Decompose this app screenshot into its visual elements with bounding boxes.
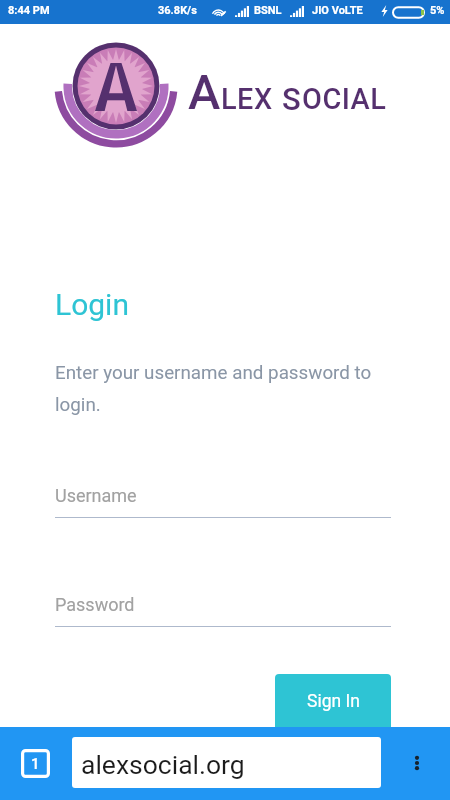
staticText: 8:44 PM	[8, 4, 50, 17]
staticText: 5%	[430, 4, 445, 17]
button[interactable]: Username	[55, 485, 391, 518]
staticText: Login	[55, 287, 129, 322]
button[interactable]: alexsocial.org	[72, 737, 381, 788]
staticText: Username	[55, 485, 137, 506]
button[interactable]: Tabs	[21, 749, 50, 778]
staticText: 1	[31, 755, 40, 773]
staticText: alexsocial.org	[81, 749, 245, 780]
staticText: OCIAL	[302, 82, 387, 116]
staticText: Password	[55, 594, 135, 615]
staticText: JIO VoLTE	[312, 4, 363, 17]
staticText: Enter your username and password to logi…	[55, 362, 395, 416]
button[interactable]: More options	[403, 749, 431, 777]
staticText: BSNL	[254, 4, 282, 17]
button[interactable]: Sign In	[275, 674, 391, 754]
staticText: A	[188, 64, 221, 121]
staticText: 36.8K/s	[158, 4, 197, 17]
staticText: S	[282, 81, 302, 117]
staticText: Sign In	[307, 691, 360, 712]
staticText: LEX	[221, 82, 273, 116]
button[interactable]: Password	[55, 594, 391, 627]
